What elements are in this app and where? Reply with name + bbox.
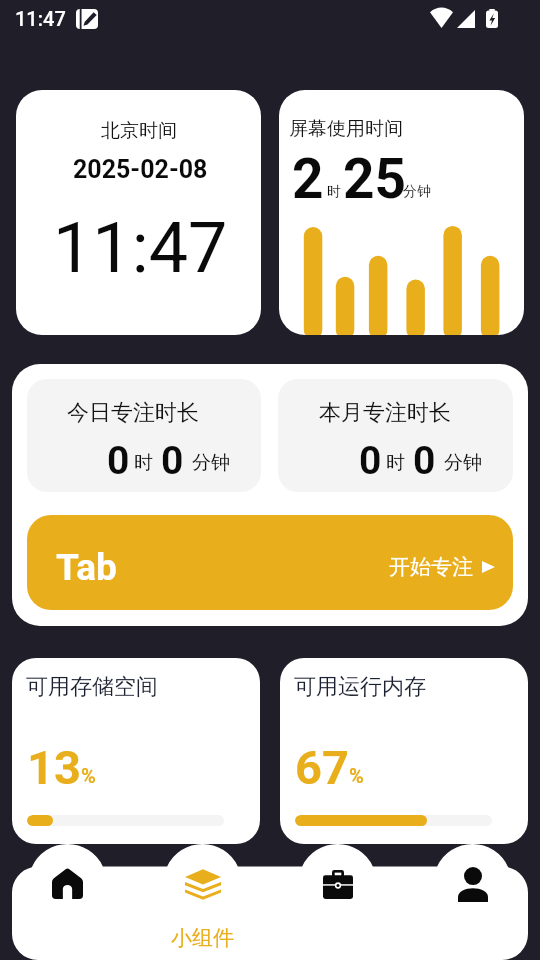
staticText: 今日专注时长 — [67, 399, 199, 427]
staticText: 25 — [343, 147, 407, 211]
staticText: 小组件 — [171, 925, 234, 951]
staticText: Tab — [56, 546, 117, 589]
staticText: 2025-02-08 — [73, 155, 208, 184]
button[interactable]: Widgets — [135, 844, 270, 960]
other: Widgets — [185, 867, 221, 899]
staticText: 11:47 — [15, 7, 66, 30]
staticText: 13 — [27, 740, 81, 795]
staticText: 开始专注 — [389, 554, 473, 580]
staticText: 分钟 — [444, 451, 482, 475]
staticText: % — [81, 764, 96, 787]
staticText: 0 — [359, 438, 382, 484]
staticText: 屏幕使用时间 — [289, 117, 403, 141]
staticText: 分钟 — [192, 451, 230, 475]
staticText: 可用存储空间 — [26, 673, 158, 701]
button[interactable]: Profile — [405, 844, 540, 960]
other: Home — [52, 868, 83, 899]
staticText: 时 — [134, 451, 153, 475]
staticText: % — [349, 764, 364, 787]
staticText: 本月专注时长 — [319, 399, 451, 427]
staticText: 可用运行内存 — [294, 673, 426, 701]
staticText: 11:47 — [53, 207, 228, 289]
button[interactable]: 可用运行内存 — [280, 658, 528, 844]
button[interactable]: Home — [0, 844, 135, 960]
button[interactable]: Tab — [27, 515, 513, 610]
staticText: 0 — [107, 438, 130, 484]
staticText: 时 — [386, 451, 405, 475]
button[interactable]: 北京时间 — [16, 90, 261, 335]
button[interactable]: 本月专注时长 — [278, 379, 513, 492]
button[interactable]: Tools — [270, 844, 405, 960]
staticText: 0 — [161, 438, 184, 484]
other: Profile — [458, 867, 488, 902]
other: Tools — [323, 870, 353, 899]
staticText: 0 — [413, 438, 436, 484]
staticText: 北京时间 — [101, 119, 177, 143]
button[interactable]: 今日专注时长 — [27, 379, 261, 492]
staticText: 时 — [327, 183, 341, 201]
staticText: 2 — [292, 147, 324, 211]
staticText: 67 — [295, 740, 349, 795]
staticText: 分钟 — [403, 183, 431, 201]
button[interactable]: 可用存储空间 — [12, 658, 260, 844]
button[interactable]: 屏幕使用时间 — [279, 90, 524, 335]
